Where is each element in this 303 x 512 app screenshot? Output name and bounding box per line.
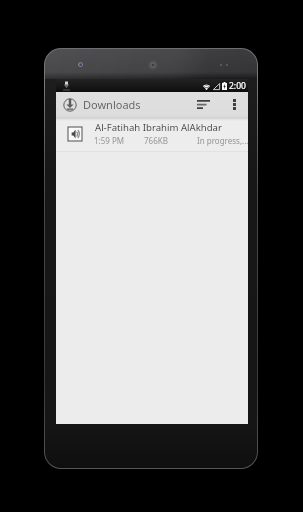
staticText: 766KB bbox=[144, 135, 168, 146]
staticText: Al-Fatihah Ibrahim AlAkhdar bbox=[95, 121, 255, 134]
button[interactable]: More options bbox=[226, 92, 242, 117]
staticText: 2:00 bbox=[229, 80, 246, 92]
button[interactable]: Al-Fatihah Ibrahim AlAkhdar bbox=[56, 117, 248, 151]
staticText: In progress,... bbox=[197, 135, 249, 146]
button[interactable]: Sort bbox=[192, 92, 215, 117]
staticText: Downloads bbox=[83, 97, 141, 112]
staticText: 1:59 PM bbox=[94, 135, 125, 146]
